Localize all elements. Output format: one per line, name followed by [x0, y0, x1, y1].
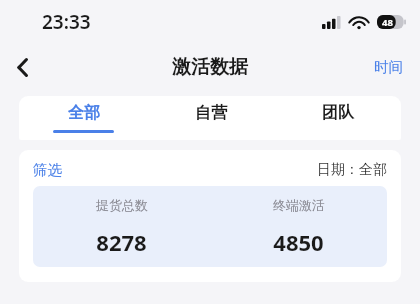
- staticText: 终端激活: [273, 197, 325, 213]
- button[interactable]: 提货总数: [33, 186, 210, 267]
- staticText: 4850: [273, 227, 324, 257]
- staticText: 23:33: [42, 9, 91, 35]
- staticText: 8278: [96, 227, 147, 257]
- button[interactable]: Back: [0, 45, 44, 89]
- button[interactable]: 日期：全部: [317, 161, 387, 179]
- button[interactable]: 时间: [357, 48, 420, 86]
- staticText: 团队: [322, 103, 354, 123]
- staticText: 激活数据: [172, 55, 248, 79]
- staticText: 自营: [195, 103, 227, 123]
- staticText: 提货总数: [96, 197, 148, 213]
- button[interactable]: 自营: [147, 96, 274, 140]
- button[interactable]: 团队: [274, 96, 401, 140]
- staticText: 全部: [68, 103, 100, 123]
- button[interactable]: 筛选: [33, 161, 62, 179]
- staticText: 48: [382, 16, 393, 29]
- staticText: 日期：全部: [317, 161, 387, 179]
- staticText: 筛选: [33, 161, 62, 179]
- button[interactable]: 终端激活: [210, 186, 387, 267]
- staticText: 时间: [374, 58, 403, 76]
- button[interactable]: 全部: [19, 96, 147, 140]
